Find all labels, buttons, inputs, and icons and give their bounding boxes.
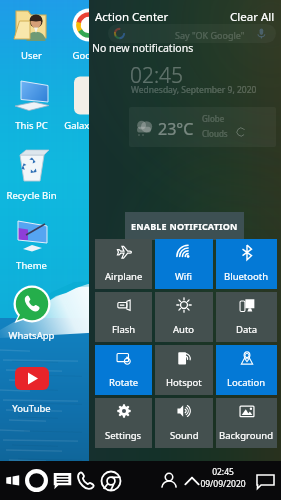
staticText: Action Center <box>95 9 169 25</box>
button[interactable]: Action Center <box>95 9 169 25</box>
staticText: 23°C <box>158 118 194 140</box>
staticText: Google <box>60 49 117 62</box>
button[interactable]: Account <box>157 461 180 500</box>
button[interactable]: Google <box>60 4 117 62</box>
staticText: This PC <box>3 119 60 132</box>
button[interactable]: Show hidden icons <box>180 461 203 500</box>
button[interactable]: This PC <box>3 74 60 132</box>
staticText: No new notifications <box>92 41 194 55</box>
button[interactable]: Rotate <box>95 345 152 395</box>
staticText: ENABLE NOTIFICATION <box>131 220 238 232</box>
staticText: User <box>3 49 60 62</box>
button[interactable]: Notifications <box>254 461 277 500</box>
staticText: Rotate <box>109 376 139 389</box>
staticText: Clear All <box>230 9 275 25</box>
staticText: Say "OK Google" <box>175 29 245 41</box>
button[interactable]: 02:45 <box>197 466 249 490</box>
button[interactable]: Flash <box>95 292 152 342</box>
staticText: 09/09/2020 <box>197 478 249 490</box>
button[interactable]: WhatsApp <box>3 284 60 342</box>
staticText: Data <box>236 323 258 336</box>
button[interactable]: YouTube <box>3 357 60 415</box>
button[interactable]: Phone <box>74 461 97 500</box>
staticText: Background <box>219 429 274 442</box>
staticText: Recycle Bin <box>3 189 60 202</box>
button[interactable]: Galaxy S20 <box>60 74 117 132</box>
button[interactable]: Start <box>1 461 24 500</box>
button[interactable] <box>129 107 276 147</box>
button[interactable]: User <box>3 4 60 62</box>
staticText: 02:45 <box>197 466 249 478</box>
button[interactable]: Wifi <box>155 239 213 289</box>
staticText: Airplane <box>105 270 143 283</box>
button[interactable]: Settings <box>95 398 152 448</box>
staticText: Location <box>227 376 266 389</box>
button[interactable]: Search <box>25 461 48 500</box>
staticText: Settings <box>105 429 142 442</box>
staticText: Clouds <box>202 128 228 139</box>
staticText: Hotspot <box>166 376 202 389</box>
staticText: Flash <box>112 323 136 336</box>
staticText: Theme <box>3 259 60 272</box>
button[interactable]: Chrome <box>99 461 122 500</box>
button[interactable]: Data <box>216 292 277 342</box>
button[interactable]: Hotspot <box>155 345 213 395</box>
button[interactable]: Auto <box>155 292 213 342</box>
staticText: YouTube <box>3 402 60 415</box>
button[interactable]: Task View <box>51 461 74 500</box>
button[interactable]: Clear All <box>230 9 275 25</box>
staticText: Bluetooth <box>224 270 269 283</box>
staticText: Wifi <box>175 270 193 283</box>
staticText: Auto <box>173 323 195 336</box>
staticText: Wednesday, September 9, 2020 <box>131 84 257 96</box>
button[interactable]: Location <box>216 345 277 395</box>
staticText: WhatsApp <box>3 329 60 342</box>
staticText: Sound <box>170 429 199 442</box>
button[interactable]: ENABLE NOTIFICATION <box>125 212 244 240</box>
button[interactable]: Theme <box>3 214 60 272</box>
button[interactable] <box>108 24 276 43</box>
button[interactable]: Background <box>216 398 277 448</box>
staticText: 02:45 <box>130 61 184 90</box>
staticText: Galaxy S20 <box>60 119 117 132</box>
button[interactable]: Recycle Bin <box>3 144 60 202</box>
staticText: Globe <box>202 113 225 124</box>
button[interactable]: Sound <box>155 398 213 448</box>
button[interactable]: Airplane <box>95 239 152 289</box>
button[interactable]: Bluetooth <box>216 239 277 289</box>
